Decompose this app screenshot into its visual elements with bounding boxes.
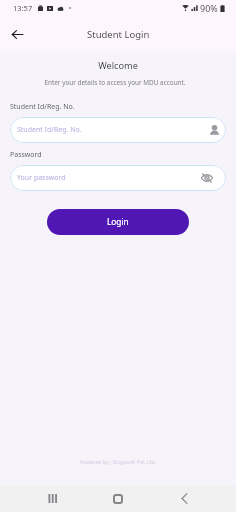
button[interactable]: Recent apps [19,485,85,512]
other: Account [208,124,221,137]
button[interactable]: Your password [10,165,226,191]
staticText: Login [107,216,129,227]
staticText: 13:57 [13,3,33,13]
button[interactable]: Back [151,485,217,512]
staticText: Student Id/Reg. No. [17,125,82,135]
button[interactable]: Back [8,25,26,43]
button[interactable]: Login [47,209,189,235]
staticText: Powered by : Shigasoft Pvt. Ltd. [0,458,236,465]
other: Show password [200,171,214,185]
button[interactable]: Home [85,485,151,512]
staticText: Enter your details to access your MDU ac… [0,78,230,87]
staticText: Student Login [87,28,150,41]
staticText: Your password [17,173,66,183]
staticText: Welcome [0,59,236,72]
button[interactable]: Student Id/Reg. No. [10,117,226,143]
staticText: 90% [200,2,218,14]
staticText: Password [10,150,42,160]
staticText: Student Id/Reg. No. [10,102,75,112]
